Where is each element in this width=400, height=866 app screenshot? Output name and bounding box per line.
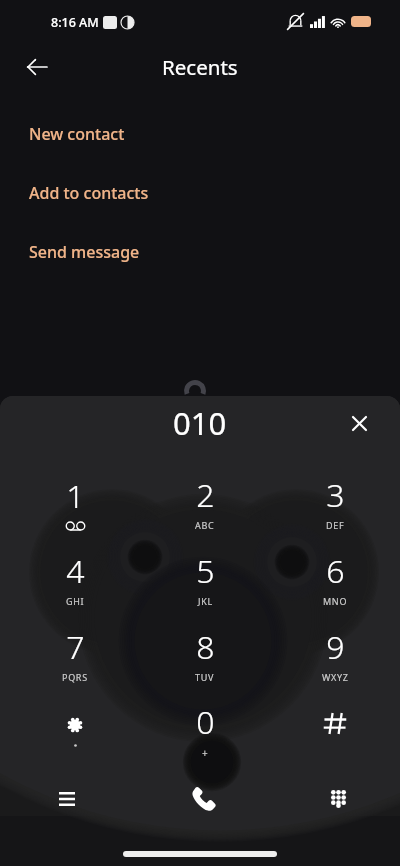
button[interactable]: Keypad (267, 771, 400, 827)
button[interactable]: New contact (0, 104, 400, 163)
staticText: 6 (326, 549, 345, 593)
button[interactable]: 7 (10, 616, 140, 692)
staticText: 5 (196, 549, 215, 593)
staticText: 7 (66, 625, 85, 669)
button[interactable]: Clear (341, 405, 377, 441)
staticText: 2 (196, 473, 215, 517)
staticText: 8 (196, 625, 215, 669)
staticText: 3 (326, 473, 345, 517)
staticText: ABC (195, 519, 215, 531)
staticText: DEF (326, 519, 345, 531)
button[interactable] (270, 692, 400, 768)
staticText: 0 (196, 700, 215, 744)
staticText: 1 (66, 474, 85, 518)
button[interactable]: 0 (140, 692, 270, 768)
staticText: 8:16 AM (51, 14, 99, 31)
staticText: MNO (323, 595, 348, 607)
staticText: Send message (29, 241, 140, 263)
staticText: TUV (195, 671, 215, 683)
staticText: Add to contacts (29, 182, 149, 204)
button[interactable]: 8 (140, 616, 270, 692)
button[interactable]: 1 (10, 464, 140, 540)
staticText: 010 (173, 402, 227, 444)
staticText: WXYZ (322, 671, 349, 683)
button[interactable]: 9 (270, 616, 400, 692)
button[interactable]: 5 (140, 540, 270, 616)
button[interactable]: 4 (10, 540, 140, 616)
button[interactable]: Call (134, 771, 267, 827)
staticText: New contact (29, 123, 125, 145)
button[interactable] (10, 692, 140, 768)
staticText: Recents (162, 53, 238, 81)
staticText: PQRS (62, 671, 88, 683)
button[interactable]: More options (0, 771, 134, 827)
button[interactable]: Add to contacts (0, 163, 400, 222)
staticText: 4 (66, 549, 85, 593)
staticText: 9 (326, 625, 345, 669)
button[interactable]: 3 (270, 464, 400, 540)
button[interactable]: Send message (0, 222, 400, 281)
button[interactable]: 6 (270, 540, 400, 616)
button[interactable]: 2 (140, 464, 270, 540)
button[interactable]: Back (17, 47, 57, 87)
staticText: + (202, 746, 209, 760)
staticText: JKL (198, 595, 213, 607)
staticText: GHI (66, 595, 85, 607)
